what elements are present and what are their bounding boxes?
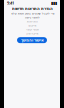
staticText: ▮▮▮	[51, 1, 57, 5]
staticText: לאשר גישה	[24, 16, 39, 19]
staticText: הגדרת התראות חדשות	[11, 6, 52, 11]
staticText: אישור והמשך	[20, 38, 43, 42]
staticText: מיקרופון	[26, 32, 38, 35]
staticText: 9:41	[7, 0, 14, 6]
staticText: כדי לקבל עדכונים בזמן אמת עליך	[10, 12, 53, 15]
button[interactable]: אישור והמשך	[17, 37, 47, 43]
staticText: התראות	[26, 20, 37, 23]
staticText: מיקום	[28, 24, 36, 27]
staticText: אנשי קשר	[25, 28, 38, 31]
